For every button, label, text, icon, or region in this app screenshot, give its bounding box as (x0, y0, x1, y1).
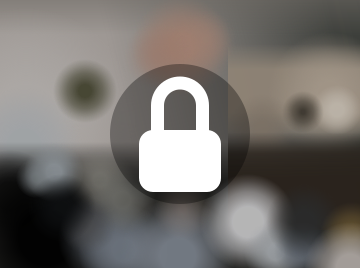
button[interactable]: Content locked (110, 64, 250, 204)
